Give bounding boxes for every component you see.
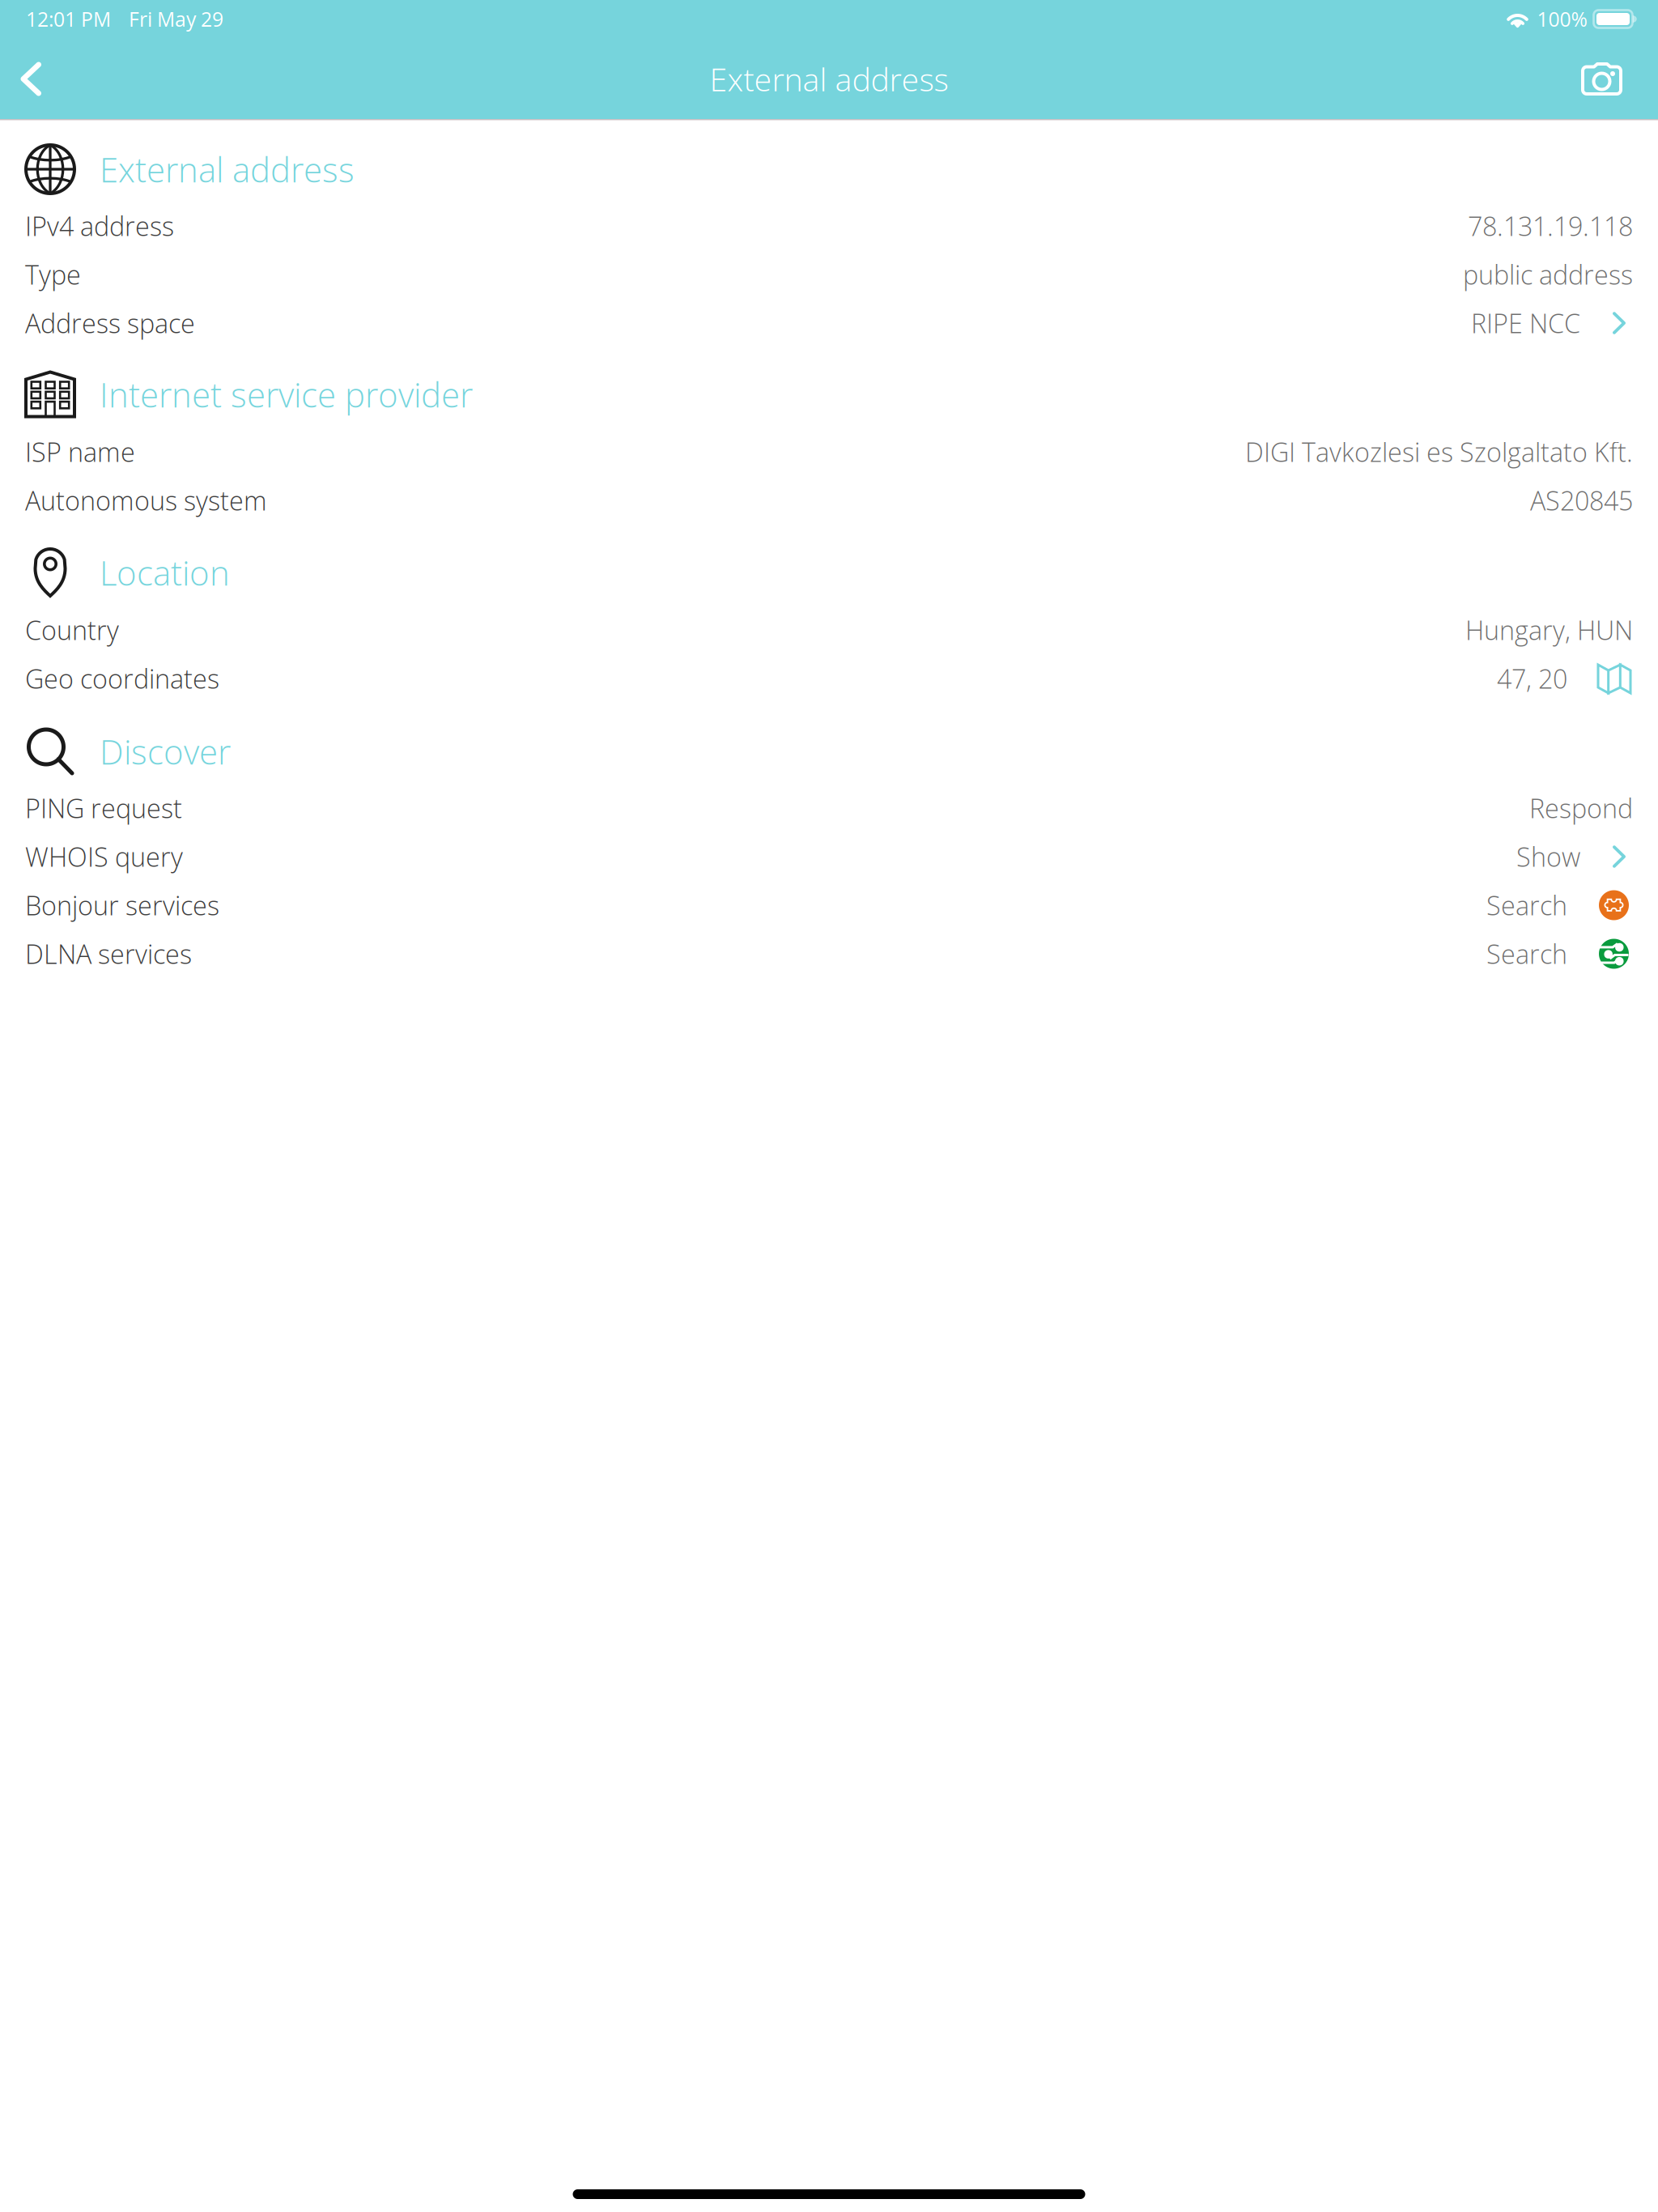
staticText: Fri May 29	[129, 5, 223, 33]
staticText: Address space	[25, 305, 195, 341]
staticText: 100%	[1537, 5, 1587, 33]
staticText: public address	[1463, 257, 1633, 292]
staticText: DIGI Tavkozlesi es Szolgaltato Kft.	[1245, 434, 1633, 470]
staticText: PING request	[25, 790, 182, 826]
staticText: WHOIS query	[25, 839, 183, 874]
staticText: Search	[1486, 936, 1567, 972]
staticText: Hungary, HUN	[1465, 612, 1633, 648]
button[interactable]: Back	[0, 38, 66, 119]
staticText: Internet service provider	[100, 371, 473, 417]
staticText: External address	[710, 57, 948, 101]
staticText: Location	[100, 549, 230, 596]
staticText: 78.131.19.118	[1468, 208, 1633, 244]
staticText: Bonjour services	[25, 887, 219, 923]
button[interactable]: DLNA services	[0, 929, 1658, 978]
staticText: Country	[25, 612, 119, 648]
staticText: Respond	[1529, 790, 1633, 826]
staticText: Geo coordinates	[25, 661, 219, 696]
staticText: 47, 20	[1497, 661, 1567, 696]
button[interactable]: Geo coordinates	[0, 654, 1658, 703]
staticText: RIPE NCC	[1471, 305, 1580, 341]
staticText: IPv4 address	[25, 208, 174, 244]
staticText: Search	[1486, 887, 1567, 923]
button[interactable]: WHOIS query	[0, 832, 1658, 881]
staticText: AS20845	[1530, 483, 1633, 518]
staticText: Type	[25, 257, 81, 292]
staticText: External address	[100, 146, 355, 192]
button[interactable]: Bonjour services	[0, 881, 1658, 929]
staticText: Show	[1516, 839, 1580, 874]
staticText: ISP name	[25, 434, 135, 470]
staticText: Discover	[100, 728, 231, 774]
staticText: DLNA services	[25, 936, 192, 972]
button[interactable]: Camera	[1557, 38, 1658, 119]
staticText: Autonomous system	[25, 483, 267, 518]
button[interactable]: Address space	[0, 299, 1658, 347]
staticText: 12:01 PM	[26, 5, 111, 33]
